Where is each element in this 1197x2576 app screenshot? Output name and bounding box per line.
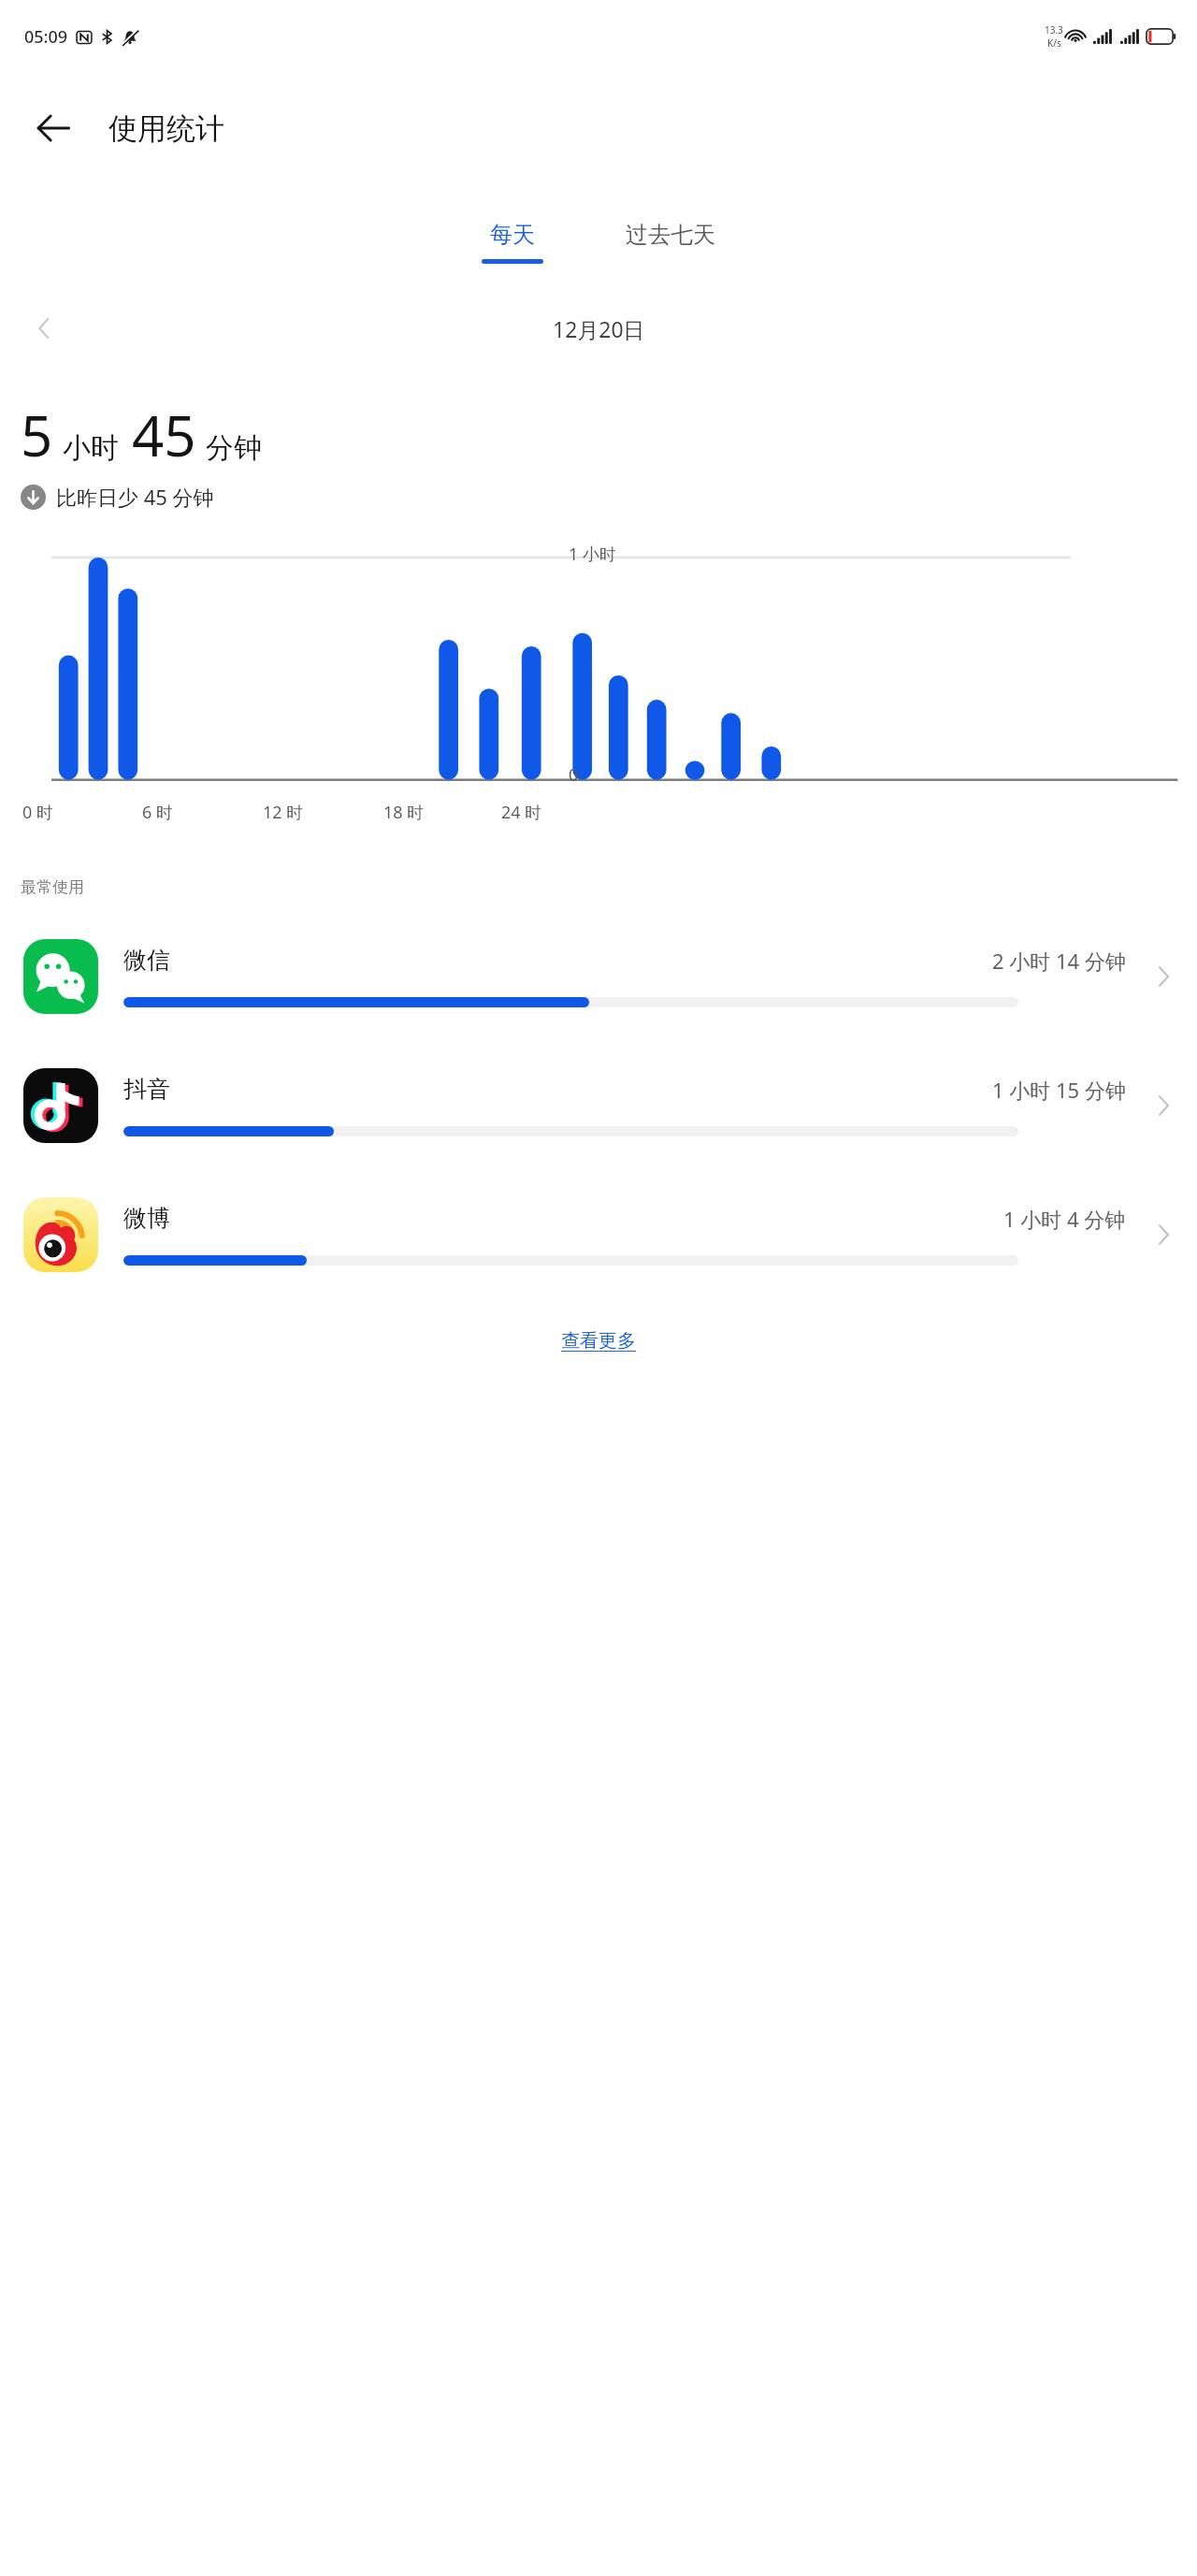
staticText: K/s (1047, 36, 1061, 50)
button[interactable]: 微信 (0, 912, 1197, 1041)
button[interactable]: 每天 (467, 215, 558, 269)
button[interactable]: Previous day (19, 303, 69, 354)
staticText: 1 小时 15 分钟 (992, 1076, 1126, 1104)
staticText: 13.3 (1045, 23, 1063, 36)
staticText: 每天 (490, 221, 535, 249)
staticText: 45 (132, 397, 196, 473)
staticText: 1 小时 4 分钟 (1003, 1205, 1126, 1233)
staticText: 分钟 (206, 430, 262, 466)
button[interactable]: Back (15, 90, 92, 166)
staticText: 6 时 (142, 801, 173, 824)
staticText: 0 (569, 763, 579, 787)
button[interactable]: 过去七天 (611, 215, 730, 269)
staticText: 小时 (63, 430, 119, 466)
staticText: 查看更多 (561, 1329, 636, 1353)
staticText: 抖音 (123, 1075, 170, 1104)
staticText: 12 时 (263, 801, 304, 824)
staticText: 12月20日 (553, 314, 645, 343)
staticText: 使用统计 (108, 110, 224, 147)
staticText: 5 (21, 397, 53, 473)
staticText: 1 小时 (569, 543, 616, 566)
staticText: 微博 (123, 1204, 170, 1233)
staticText: 18 时 (383, 801, 425, 824)
staticText: 比昨日少 45 分钟 (56, 483, 214, 511)
staticText: 2 小时 14 分钟 (992, 947, 1126, 975)
staticText: 过去七天 (626, 221, 715, 249)
button[interactable]: 微博 (0, 1170, 1197, 1299)
staticText: 0 时 (22, 801, 53, 824)
button[interactable]: 查看更多 (518, 1318, 679, 1364)
staticText: 最常使用 (21, 877, 84, 897)
staticText: 05:09 (24, 25, 68, 49)
staticText: 微信 (123, 946, 170, 975)
staticText: 24 时 (501, 801, 542, 824)
button[interactable]: 抖音 (0, 1041, 1197, 1170)
